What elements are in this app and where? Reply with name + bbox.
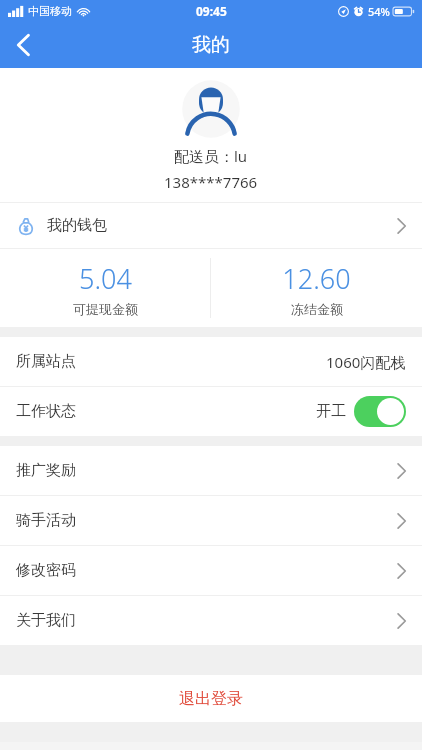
staticText: 骑手活动 bbox=[16, 511, 76, 530]
staticText: 12.60 bbox=[282, 260, 351, 297]
staticText: 09:45 bbox=[196, 3, 227, 19]
staticText: 修改密码 bbox=[16, 561, 76, 580]
button[interactable]: 所属站点 bbox=[0, 337, 422, 386]
staticText: 所属站点 bbox=[16, 352, 76, 371]
staticText: 1060闪配栈 bbox=[326, 352, 406, 372]
staticText: 54% bbox=[368, 4, 390, 19]
staticText: 配送员：lu bbox=[174, 146, 248, 166]
button[interactable]: 我的钱包 bbox=[0, 203, 422, 248]
staticText: 推广奖励 bbox=[16, 461, 76, 480]
button[interactable]: 工作状态 bbox=[0, 387, 422, 436]
staticText: 关于我们 bbox=[16, 611, 76, 630]
staticText: 中国移动 bbox=[28, 4, 72, 18]
staticText: 可提现金额 bbox=[73, 301, 138, 317]
staticText: 工作状态 bbox=[16, 402, 76, 421]
button[interactable]: 12.60 bbox=[211, 249, 422, 327]
button[interactable]: 推广奖励 bbox=[0, 446, 422, 495]
button[interactable]: 退出登录 bbox=[0, 675, 422, 722]
staticText: 5.04 bbox=[79, 260, 132, 297]
staticText: 开工 bbox=[316, 402, 346, 421]
staticText: 退出登录 bbox=[179, 689, 243, 709]
button[interactable]: 修改密码 bbox=[0, 546, 422, 595]
staticText: 138****7766 bbox=[164, 172, 258, 192]
staticText: 我的 bbox=[192, 33, 230, 57]
button[interactable]: Work status toggle, on bbox=[354, 396, 406, 427]
button[interactable]: 5.04 bbox=[0, 249, 210, 327]
staticText: 我的钱包 bbox=[47, 216, 107, 235]
button[interactable]: Back bbox=[0, 22, 46, 68]
staticText: 冻结金额 bbox=[291, 301, 343, 317]
button[interactable]: 关于我们 bbox=[0, 596, 422, 645]
button[interactable]: 骑手活动 bbox=[0, 496, 422, 545]
